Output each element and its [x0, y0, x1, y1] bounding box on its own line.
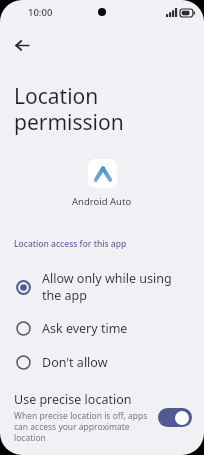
staticText: Don't allow [42, 354, 108, 371]
button[interactable]: Allow only while using the app [0, 262, 204, 311]
staticText: Location permission [14, 82, 124, 137]
staticText: Ask every time [42, 320, 128, 337]
button[interactable]: Use precise location [0, 385, 204, 451]
button[interactable]: Don't allow [0, 345, 204, 379]
staticText: Allow only while using the app [42, 270, 190, 303]
staticText: Android Auto [72, 195, 132, 208]
staticText: When precise location is off, apps can a… [14, 410, 152, 443]
staticText: Location access for this app [14, 238, 127, 250]
button[interactable]: Use precise location toggle [158, 408, 192, 427]
staticText: 10:00 [28, 6, 53, 19]
button[interactable]: Back [5, 28, 39, 62]
button[interactable]: Ask every time [0, 311, 204, 345]
staticText: Use precise location [14, 391, 132, 408]
